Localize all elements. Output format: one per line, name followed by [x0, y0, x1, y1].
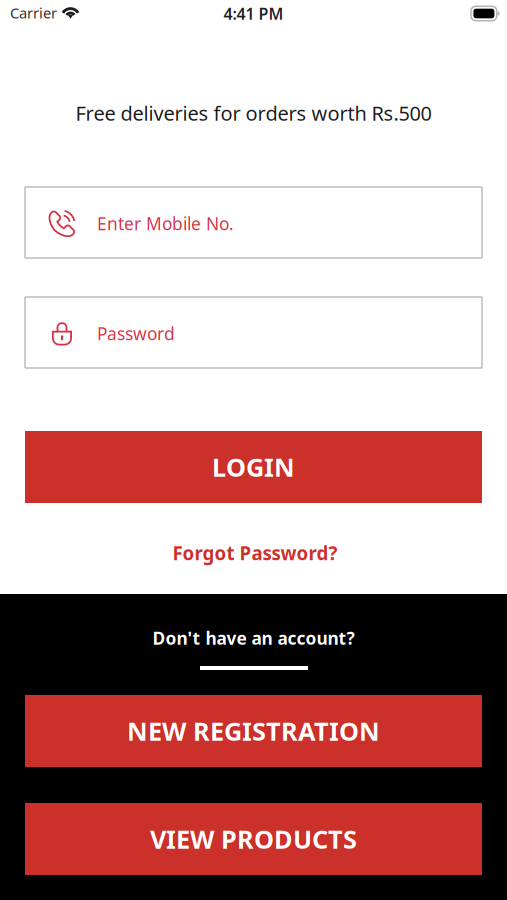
- staticText: LOGIN: [212, 450, 295, 484]
- staticText: Password: [97, 322, 175, 345]
- button[interactable]: NEW REGISTRATION: [25, 695, 482, 767]
- staticText: Don't have an account?: [152, 626, 354, 649]
- button[interactable]: LOGIN: [25, 431, 482, 503]
- staticText: VIEW PRODUCTS: [150, 822, 357, 856]
- button[interactable]: Password: [25, 297, 482, 368]
- staticText: Enter Mobile No.: [97, 212, 234, 235]
- button[interactable]: Enter Mobile No.: [25, 187, 482, 258]
- button[interactable]: VIEW PRODUCTS: [25, 803, 482, 875]
- button[interactable]: Forgot Password?: [171, 540, 339, 566]
- staticText: 4:41 PM: [223, 3, 283, 24]
- staticText: NEW REGISTRATION: [127, 714, 380, 748]
- staticText: Free deliveries for orders worth Rs.500: [75, 100, 431, 126]
- staticText: Forgot Password?: [172, 541, 337, 565]
- staticText: Carrier: [10, 3, 57, 22]
